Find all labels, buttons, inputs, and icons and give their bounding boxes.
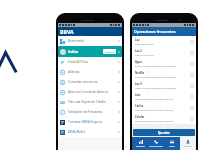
staticText: Pago de tarjetas de crédito terceras [135, 98, 174, 101]
button[interactable]: Contratar BBVA Seguros [58, 117, 122, 127]
staticText: Simulador de Préstamos [68, 110, 103, 114]
button[interactable]: Simulador de Préstamos [58, 107, 122, 117]
staticText: Agua [135, 60, 142, 64]
staticText: Pide una Tarjeta de Crédito [68, 100, 107, 104]
button[interactable]: Luz 2 [132, 47, 196, 58]
button[interactable]: Alianzas [58, 67, 122, 77]
button[interactable]: Agua [132, 58, 196, 69]
staticText: Luis [135, 93, 141, 97]
staticText: Saldos [68, 50, 79, 54]
button[interactable]: Abre una Cuenta de Ahorros [58, 87, 122, 97]
button[interactable]: Consultar sin recurso [58, 77, 122, 87]
button[interactable]: Ejecutar [133, 129, 195, 136]
staticText: Ejecutar [158, 131, 170, 135]
staticText: Luz [135, 38, 140, 42]
button[interactable]: Luis [132, 91, 196, 102]
button[interactable]: Pide una Tarjeta de Crédito [58, 97, 122, 107]
button[interactable]: Carlos [132, 102, 196, 113]
button[interactable]: Pagar [164, 137, 180, 150]
staticText: Resumen [136, 145, 145, 148]
staticText: Luz 3 [135, 82, 142, 86]
staticText: BBVA [60, 28, 74, 35]
button[interactable]: Mi perfil [180, 137, 196, 150]
staticText: Mi perfil [184, 145, 192, 148]
staticText: Pago de tarjetas de crédito terceras [135, 109, 174, 112]
staticText: Transferencias [149, 145, 163, 148]
button[interactable]: BBVA Wallet [58, 127, 122, 137]
button[interactable]: Resumen [132, 137, 148, 150]
staticText: Pago a cuentas de tarjetas de terceros [135, 76, 177, 79]
button[interactable]: Saldos [58, 46, 122, 57]
button[interactable]: Envía Mi Plata [58, 57, 122, 67]
staticText: Mostrar [105, 50, 114, 53]
staticText: Bancomóvil [68, 39, 85, 43]
staticText: Alianzas [68, 70, 80, 74]
staticText: Pagar [169, 145, 175, 148]
staticText: Carlos [135, 104, 144, 108]
button[interactable]: Bancomóvil [58, 36, 122, 46]
staticText: Abre una Cuenta de Ahorros [68, 90, 108, 94]
staticText: Pago de servicios [135, 43, 154, 46]
staticText: Operaciones frecuentes [134, 29, 176, 34]
staticText: Netflix [135, 71, 145, 75]
staticText: Contratar BBVA Seguros [68, 120, 103, 124]
staticText: Consultar sin recurso [68, 80, 98, 84]
staticText: Luz 2 [135, 49, 142, 53]
button[interactable]: Luz [132, 36, 196, 47]
button[interactable]: Transferencias [148, 137, 164, 150]
staticText: Celular [135, 115, 145, 119]
button[interactable]: Netflix [132, 69, 196, 80]
staticText: Pago a cuentas de tarjetas de terceros [135, 65, 177, 68]
staticText: Pago de servicios [135, 54, 154, 57]
button[interactable]: Celular [132, 113, 196, 124]
staticText: Pago de tarjetas de crédito terceras [135, 120, 174, 123]
staticText: Pago a cuentas de tarjetas de terceros [135, 87, 177, 90]
staticText: Envía Mi Plata [68, 60, 88, 64]
staticText: BBVA Wallet [68, 130, 86, 134]
button[interactable]: Luz 3 [132, 80, 196, 91]
